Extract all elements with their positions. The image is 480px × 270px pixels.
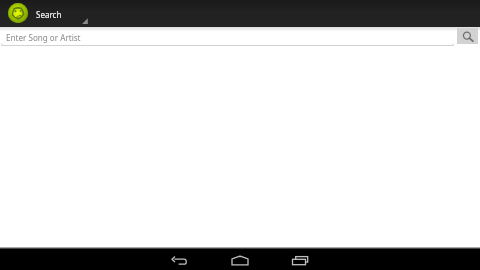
button[interactable]: Back	[150, 249, 210, 270]
button[interactable]: Search	[457, 28, 478, 44]
button[interactable]: App icon, navigate up	[8, 3, 28, 23]
button[interactable]: Recent apps	[270, 249, 330, 270]
staticText: Enter Song or Artist	[6, 32, 81, 43]
button[interactable]: Home	[210, 249, 270, 270]
button[interactable]: More options	[80, 16, 90, 26]
button[interactable]: Search	[36, 9, 62, 20]
button[interactable]: Enter Song or Artist	[0, 28, 455, 46]
